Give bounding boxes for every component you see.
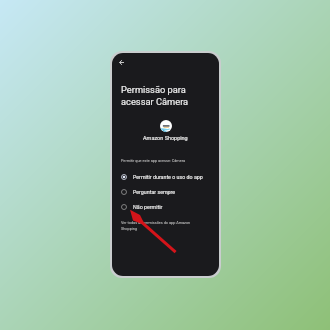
button[interactable]: Perguntar sempre [112,184,219,199]
staticText: Ver todas as permissões do app Amazon Sh… [121,220,193,231]
staticText: Perguntar sempre [133,189,176,195]
button[interactable]: Back [115,56,127,68]
staticText: Permitir durante o uso do app [133,174,203,180]
staticText: Permissão para acessar Câmera [121,84,189,107]
button[interactable]: Permitir durante o uso do app [112,169,219,184]
staticText: Permitir que este app acesse: Câmera [121,158,185,162]
staticText: Amazon Shopping [143,135,188,141]
staticText: Não permitir [133,204,163,210]
button[interactable]: Não permitir [112,199,219,214]
